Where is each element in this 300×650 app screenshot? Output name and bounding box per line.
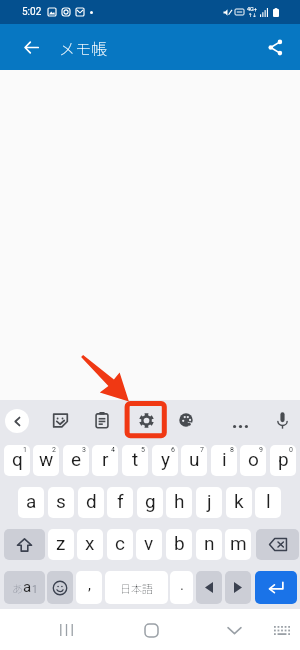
button[interactable]: y: [152, 445, 178, 476]
button[interactable]: c: [107, 529, 133, 560]
staticText: m: [230, 532, 247, 554]
button[interactable]: p: [270, 445, 296, 476]
staticText: o: [248, 448, 259, 470]
button[interactable]: m: [225, 529, 251, 560]
button[interactable]: b: [166, 529, 192, 560]
button[interactable]: a: [18, 487, 44, 518]
staticText: ↑↓: [248, 12, 257, 18]
button[interactable]: t: [122, 445, 148, 476]
button[interactable]: u: [181, 445, 207, 476]
staticText: ,: [88, 576, 91, 594]
button[interactable]: x: [77, 529, 103, 560]
button[interactable]: Shift: [4, 529, 45, 560]
button[interactable]: Emoji: [47, 571, 73, 604]
staticText: 8: [230, 446, 234, 454]
button[interactable]: l: [255, 487, 281, 518]
staticText: n: [204, 532, 215, 554]
staticText: f: [117, 490, 124, 512]
staticText: a: [26, 490, 37, 512]
button[interactable]: n: [196, 529, 222, 560]
staticText: 4G+: [247, 6, 257, 12]
staticText: y: [161, 448, 170, 470]
staticText: e: [71, 448, 82, 470]
button[interactable]: Back: [14, 30, 48, 64]
staticText: あ: [12, 580, 23, 596]
staticText: j: [207, 490, 212, 512]
button[interactable]: Settings: [134, 408, 159, 433]
staticText: u: [189, 448, 200, 470]
button[interactable]: Theme: [174, 408, 198, 432]
button[interactable]: Enter: [255, 571, 297, 604]
button[interactable]: r: [92, 445, 118, 476]
button[interactable]: Stickers: [47, 407, 74, 434]
staticText: b: [174, 532, 185, 554]
staticText: h: [174, 490, 185, 512]
staticText: c: [115, 532, 125, 554]
button[interactable]: Voice input: [272, 406, 292, 434]
button[interactable]: f: [107, 487, 133, 518]
button[interactable]: Change input mode: [4, 571, 45, 604]
button[interactable]: h: [166, 487, 192, 518]
button[interactable]: w: [33, 445, 59, 476]
button[interactable]: i: [211, 445, 237, 476]
button[interactable]: Recents: [50, 614, 82, 646]
staticText: l: [266, 490, 271, 512]
button[interactable]: j: [196, 487, 222, 518]
staticText: z: [56, 532, 66, 554]
button[interactable]: 日本語: [105, 571, 168, 604]
staticText: 9: [259, 446, 263, 454]
button[interactable]: Share: [258, 30, 292, 64]
staticText: メモ帳: [59, 36, 108, 59]
button[interactable]: s: [48, 487, 74, 518]
staticText: 3: [82, 446, 86, 454]
button[interactable]: k: [226, 487, 252, 518]
staticText: .: [180, 576, 184, 594]
staticText: i: [222, 448, 227, 470]
button[interactable]: e: [63, 445, 89, 476]
button[interactable]: d: [78, 487, 104, 518]
button[interactable]: g: [137, 487, 163, 518]
button[interactable]: More options: [228, 414, 253, 439]
staticText: 4: [111, 446, 115, 454]
staticText: 日本語: [120, 580, 153, 596]
button[interactable]: .: [170, 571, 193, 604]
button[interactable]: ,: [76, 571, 102, 604]
button[interactable]: z: [48, 529, 74, 560]
button[interactable]: Move cursor right: [225, 571, 251, 604]
staticText: r: [102, 448, 109, 470]
staticText: d: [86, 490, 97, 512]
button[interactable]: v: [136, 529, 162, 560]
staticText: v: [144, 532, 154, 554]
button[interactable]: Clipboard: [89, 407, 115, 433]
staticText: a: [23, 578, 32, 596]
button[interactable]: Move cursor left: [196, 571, 222, 604]
staticText: w: [39, 448, 54, 470]
button[interactable]: Change keyboard: [267, 615, 297, 645]
staticText: x: [85, 532, 95, 554]
staticText: 2: [52, 446, 56, 454]
button[interactable]: o: [240, 445, 266, 476]
button[interactable]: q: [4, 445, 30, 476]
staticText: t: [132, 448, 139, 470]
staticText: q: [12, 448, 23, 470]
staticText: 7: [200, 446, 204, 454]
staticText: s: [56, 490, 66, 512]
staticText: 5: [141, 446, 145, 454]
staticText: p: [278, 448, 289, 470]
staticText: 1: [23, 446, 27, 454]
button[interactable]: Home: [135, 614, 167, 646]
staticText: g: [145, 490, 156, 512]
staticText: 1: [32, 584, 38, 596]
button[interactable]: Close toolbar: [5, 409, 29, 433]
staticText: 6: [171, 446, 175, 454]
staticText: 5:02: [22, 6, 42, 18]
staticText: 0: [289, 446, 293, 454]
button[interactable]: Hide keyboard: [218, 614, 250, 646]
button[interactable]: Backspace: [256, 529, 299, 560]
staticText: k: [234, 490, 244, 512]
